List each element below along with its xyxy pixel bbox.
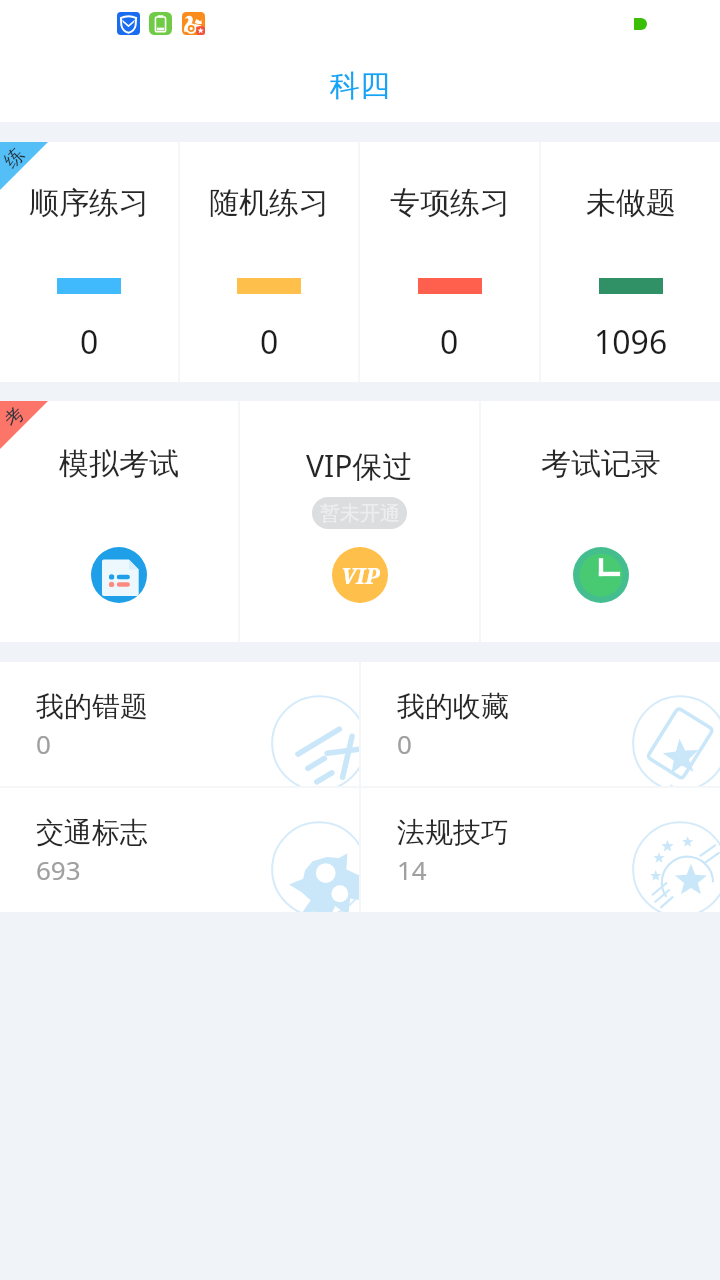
staticText: 我的错题 — [36, 689, 148, 724]
staticText: 顺序练习 — [29, 184, 149, 222]
staticText: 693 — [36, 852, 81, 887]
staticText: 14 — [397, 852, 427, 887]
staticText: 0 — [36, 726, 51, 761]
staticText: 考 — [0, 402, 30, 432]
button[interactable]: 模拟考试 — [0, 401, 238, 642]
button[interactable]: UC Browser notification — [182, 12, 205, 35]
button[interactable]: 未做题 — [541, 142, 720, 382]
staticText: 随机练习 — [209, 184, 329, 222]
button[interactable]: 交通标志 — [0, 788, 359, 912]
button[interactable]: 考试记录 — [481, 401, 720, 642]
staticText: 1096 — [594, 320, 668, 364]
staticText: 考试记录 — [541, 445, 661, 483]
staticText: 0 — [80, 320, 99, 364]
staticText: 科四 — [330, 67, 390, 105]
button[interactable]: 法规技巧 — [361, 788, 720, 912]
staticText: 0 — [440, 320, 459, 364]
button[interactable]: VIP保过 — [240, 401, 479, 642]
staticText: 0 — [397, 726, 412, 761]
staticText: VIP保过 — [306, 445, 413, 486]
staticText: 法规技巧 — [397, 815, 509, 850]
button[interactable]: 随机练习 — [180, 142, 358, 382]
other: Battery level — [634, 18, 647, 30]
staticText: 0 — [260, 320, 279, 364]
staticText: 练 — [0, 143, 30, 173]
staticText: 未做题 — [586, 184, 676, 222]
button[interactable]: Security manager notification — [117, 12, 140, 35]
staticText: 暂未开通 — [320, 501, 400, 526]
staticText: 交通标志 — [36, 815, 148, 850]
staticText: 我的收藏 — [397, 689, 509, 724]
button[interactable]: 我的错题 — [0, 662, 359, 786]
staticText: 专项练习 — [390, 184, 510, 222]
button[interactable]: 我的收藏 — [361, 662, 720, 786]
staticText: 模拟考试 — [59, 445, 179, 483]
button[interactable]: 专项练习 — [360, 142, 539, 382]
button[interactable]: 顺序练习 — [0, 142, 178, 382]
staticText: VIP — [341, 560, 380, 590]
button[interactable]: Battery saver notification — [149, 12, 172, 35]
